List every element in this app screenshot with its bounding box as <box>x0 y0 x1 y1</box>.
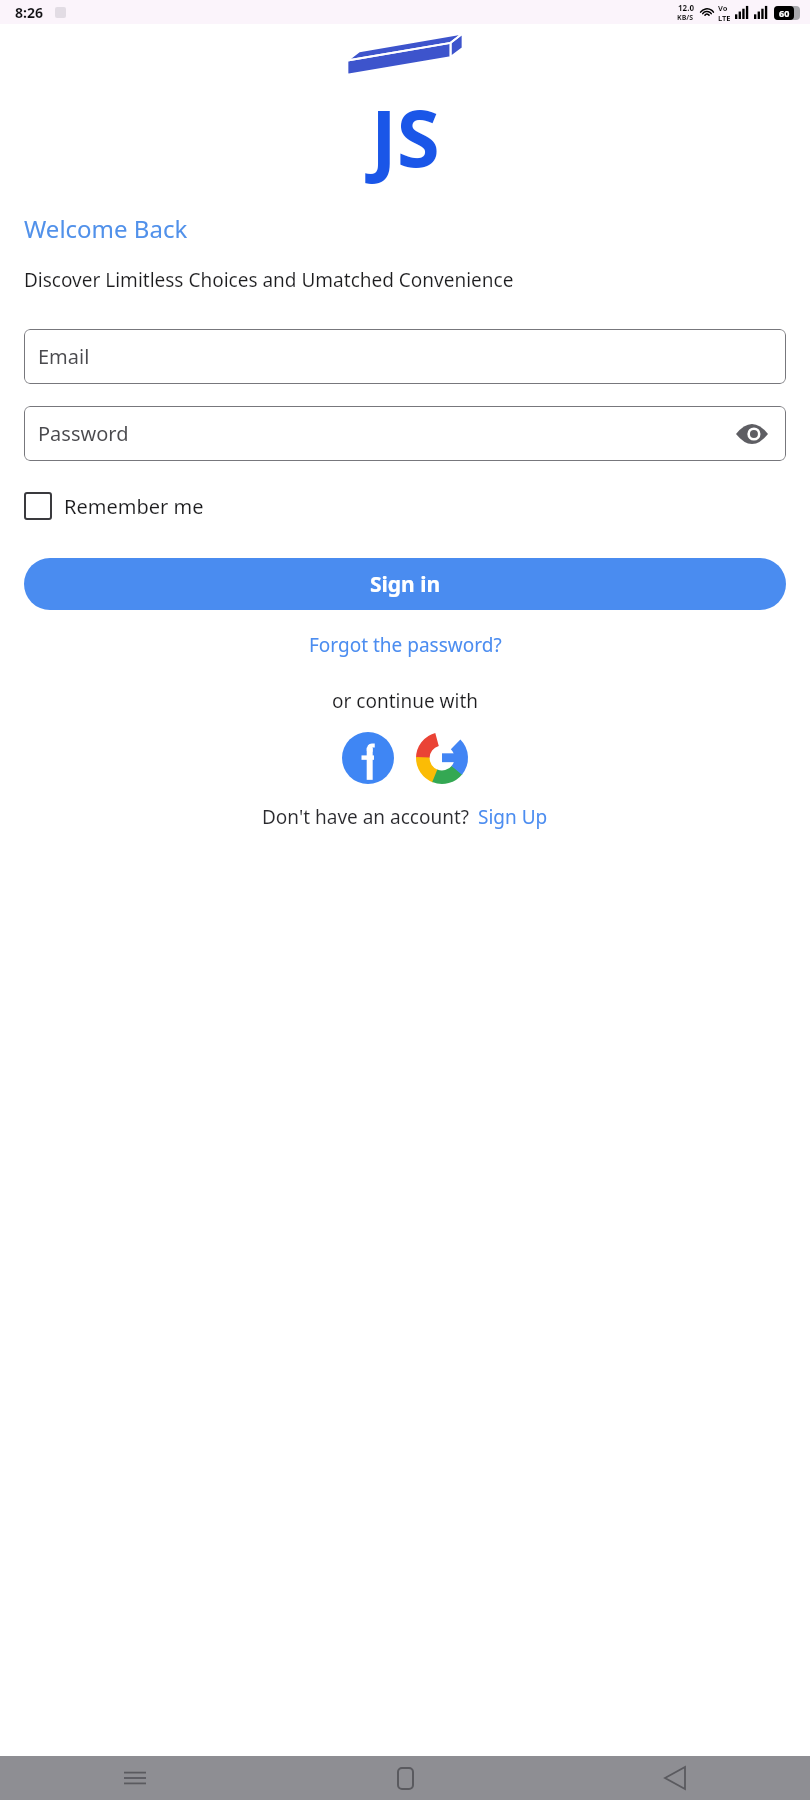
staticText: Forgot the password? <box>309 632 502 658</box>
button[interactable]: Back <box>540 1756 810 1800</box>
staticText: Sign Up <box>478 804 548 830</box>
staticText: JS <box>371 84 440 190</box>
button[interactable]: Continue with Google <box>416 732 468 784</box>
button[interactable]: Show password <box>734 416 770 452</box>
staticText: Discover Limitless Choices and Umatched … <box>24 267 514 293</box>
button[interactable]: Continue with Facebook <box>342 732 394 784</box>
button[interactable]: Recent apps <box>0 1756 270 1800</box>
button[interactable]: Password <box>24 406 786 461</box>
staticText: 8:26 <box>15 3 43 22</box>
staticText: or continue with <box>332 688 478 714</box>
staticText: Sign in <box>370 570 441 599</box>
button[interactable]: Home <box>270 1756 540 1800</box>
button[interactable]: Email <box>24 329 786 384</box>
staticText: Welcome Back <box>24 212 188 245</box>
staticText: Email <box>38 343 90 370</box>
button[interactable]: Remember me <box>24 488 204 524</box>
staticText: Remember me <box>64 493 204 520</box>
button[interactable]: Forgot the password? <box>0 632 810 658</box>
staticText: LTE <box>718 13 731 23</box>
staticText: 12.0 <box>678 2 694 13</box>
staticText: 60 <box>779 7 790 19</box>
button[interactable]: Sign Up <box>478 804 548 830</box>
staticText: KB/S <box>677 13 694 23</box>
button[interactable]: Sign in <box>24 558 786 610</box>
staticText: Don't have an account? <box>262 804 470 830</box>
staticText: Password <box>38 420 129 447</box>
staticText: Vo <box>718 3 728 13</box>
